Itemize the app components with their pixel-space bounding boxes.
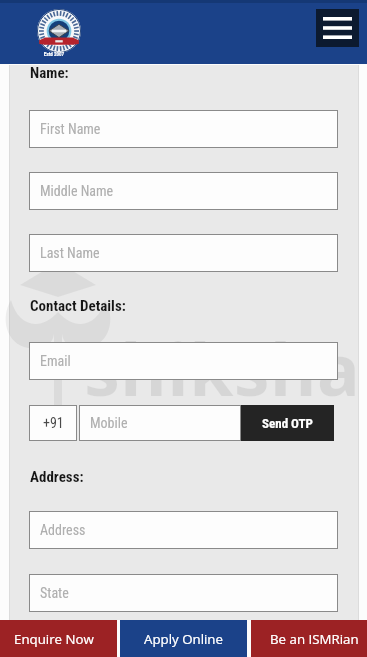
button[interactable]: Be an ISMRian [251,620,367,657]
staticText: Apply Online [144,630,223,648]
button[interactable]: Mobile [79,405,241,441]
staticText: Address [40,522,86,538]
button[interactable]: Apply Online [120,620,247,657]
staticText: Email [40,353,71,369]
staticText: shiksha [84,319,361,417]
staticText: State [40,585,69,601]
button[interactable]: Enquire Now [0,620,117,657]
staticText: +91 [43,415,64,431]
button[interactable]: First Name [29,110,338,148]
staticText: Estd 2007 [44,51,64,57]
staticText: Send OTP [262,416,313,431]
staticText: Contact Details: [30,297,126,315]
staticText: Name: [30,64,69,82]
staticText: First Name [40,121,101,137]
button[interactable]: Send OTP [241,405,334,441]
staticText: Be an ISMRian [270,630,359,648]
button[interactable]: Middle Name [29,172,338,210]
button[interactable]: Open navigation menu [316,9,359,47]
button[interactable]: +91 [29,405,77,441]
staticText: Middle Name [40,183,114,199]
staticText: Last Name [40,245,100,261]
staticText: Enquire Now [14,630,94,648]
staticText: Mobile [90,415,128,431]
staticText: Address: [30,468,84,486]
button[interactable]: Email [29,342,338,380]
button[interactable]: State [29,574,338,612]
button[interactable]: Address [29,511,338,549]
button[interactable]: Last Name [29,234,338,272]
